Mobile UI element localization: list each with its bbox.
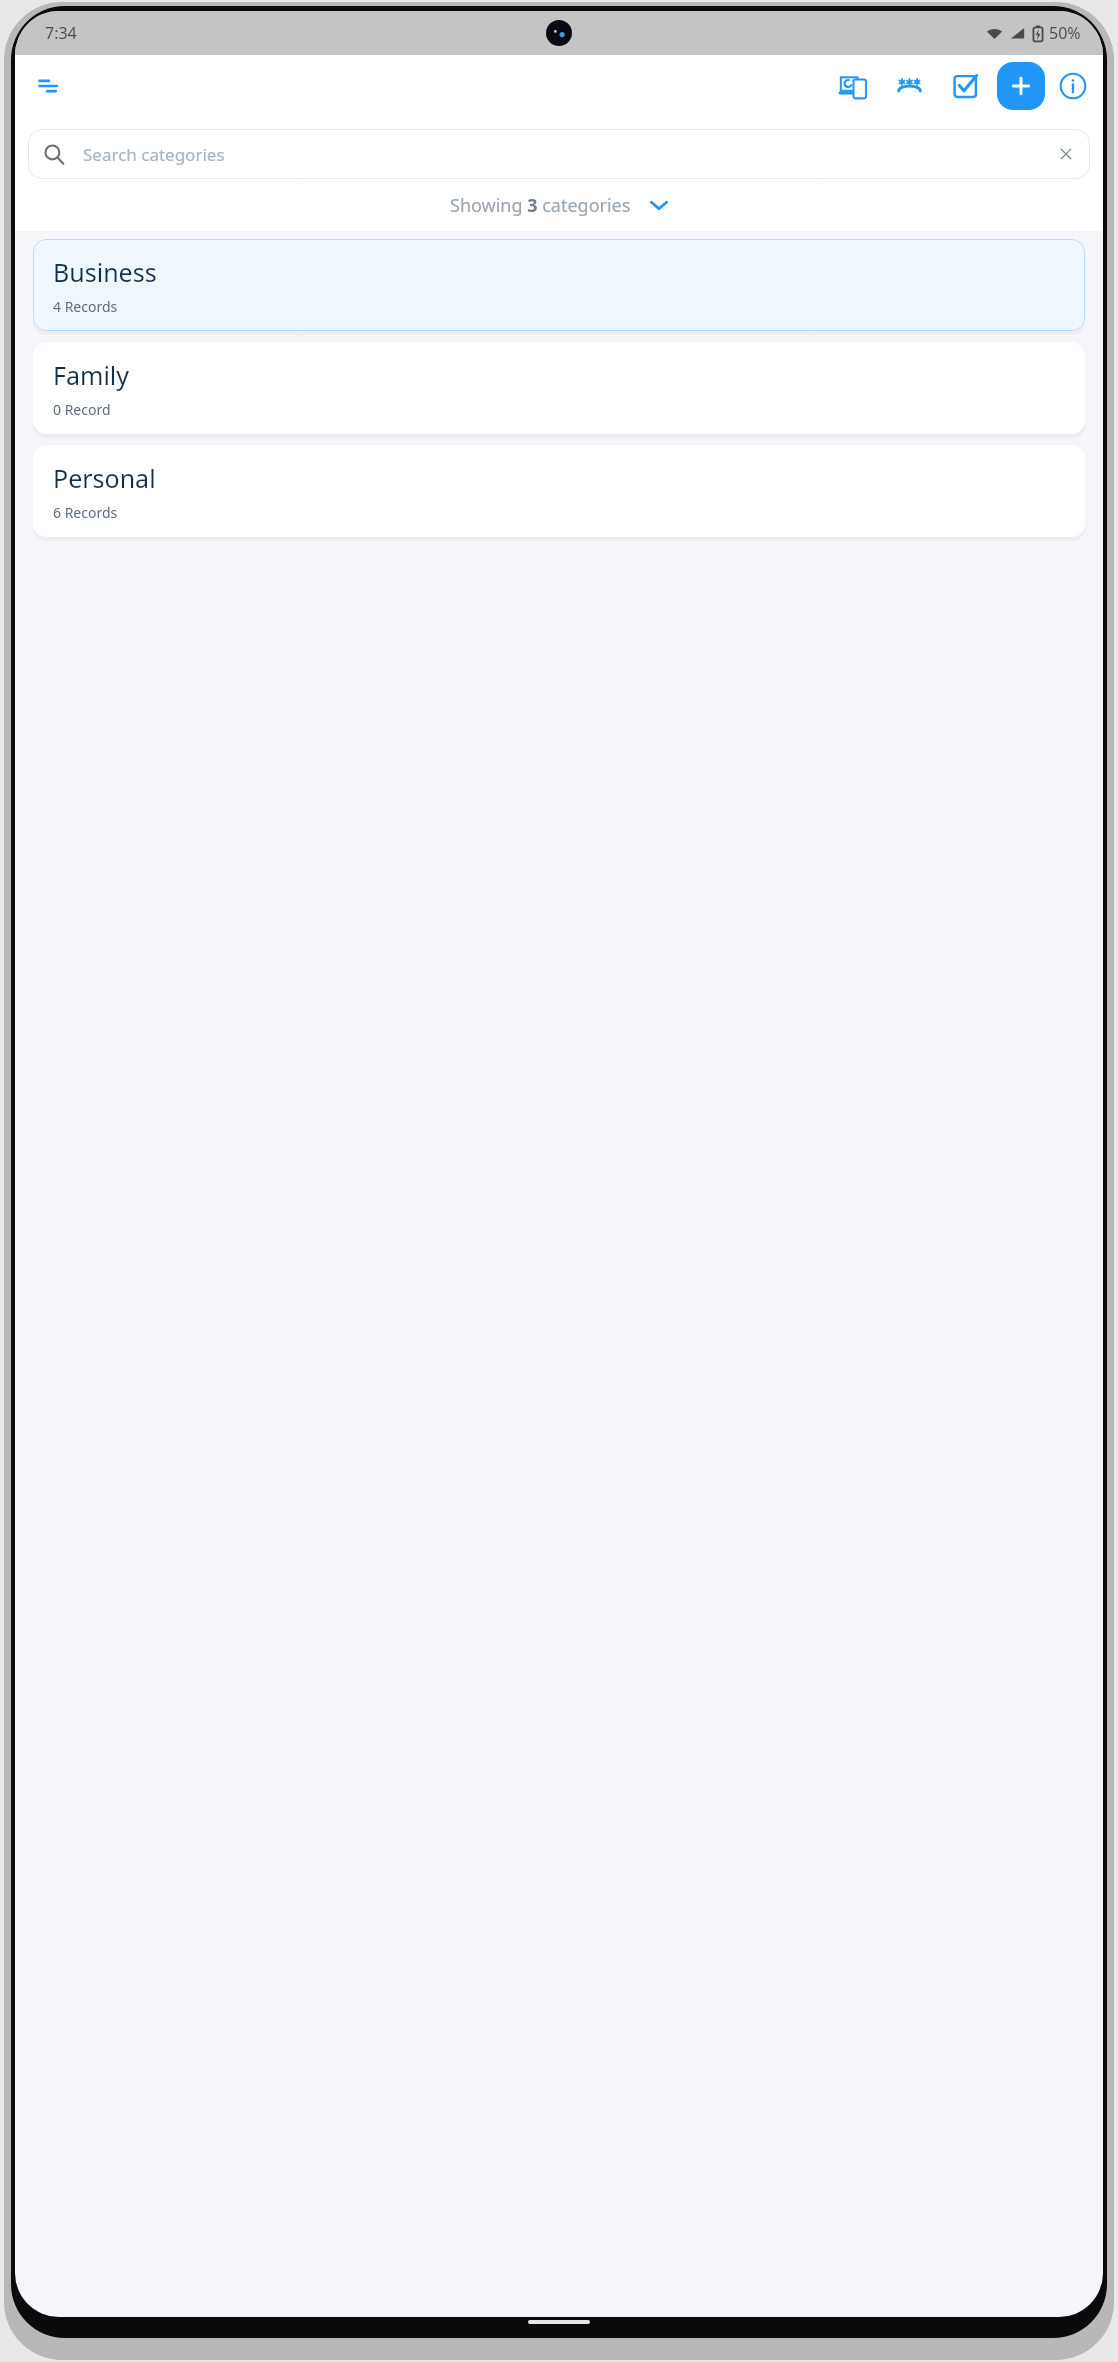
button[interactable]: Password generator [889,66,929,106]
button[interactable]: Personal [33,445,1085,537]
button[interactable]: Showing 3 categories [15,179,1103,231]
staticText: 0 Record [53,400,111,419]
staticText: Family [53,358,130,392]
staticText: 6 Records [53,503,118,522]
staticText: Business [53,255,157,289]
button[interactable]: Sync devices [833,66,873,106]
button[interactable]: Business [33,239,1085,331]
staticText: Personal [53,461,156,495]
button[interactable]: Family [33,342,1085,434]
button[interactable]: Search categories [28,129,1090,179]
button[interactable]: Sort [29,64,73,108]
button[interactable]: Info [1053,66,1093,106]
button[interactable]: Add [997,62,1045,110]
staticText: Search categories [83,143,1058,166]
staticText: 4 Records [53,297,118,316]
other: Clear [1058,146,1074,162]
staticText: Showing 3 categories [450,193,631,218]
button[interactable]: Select [945,66,985,106]
staticText: 50% [1049,22,1081,44]
staticText: 7:34 [45,22,77,44]
